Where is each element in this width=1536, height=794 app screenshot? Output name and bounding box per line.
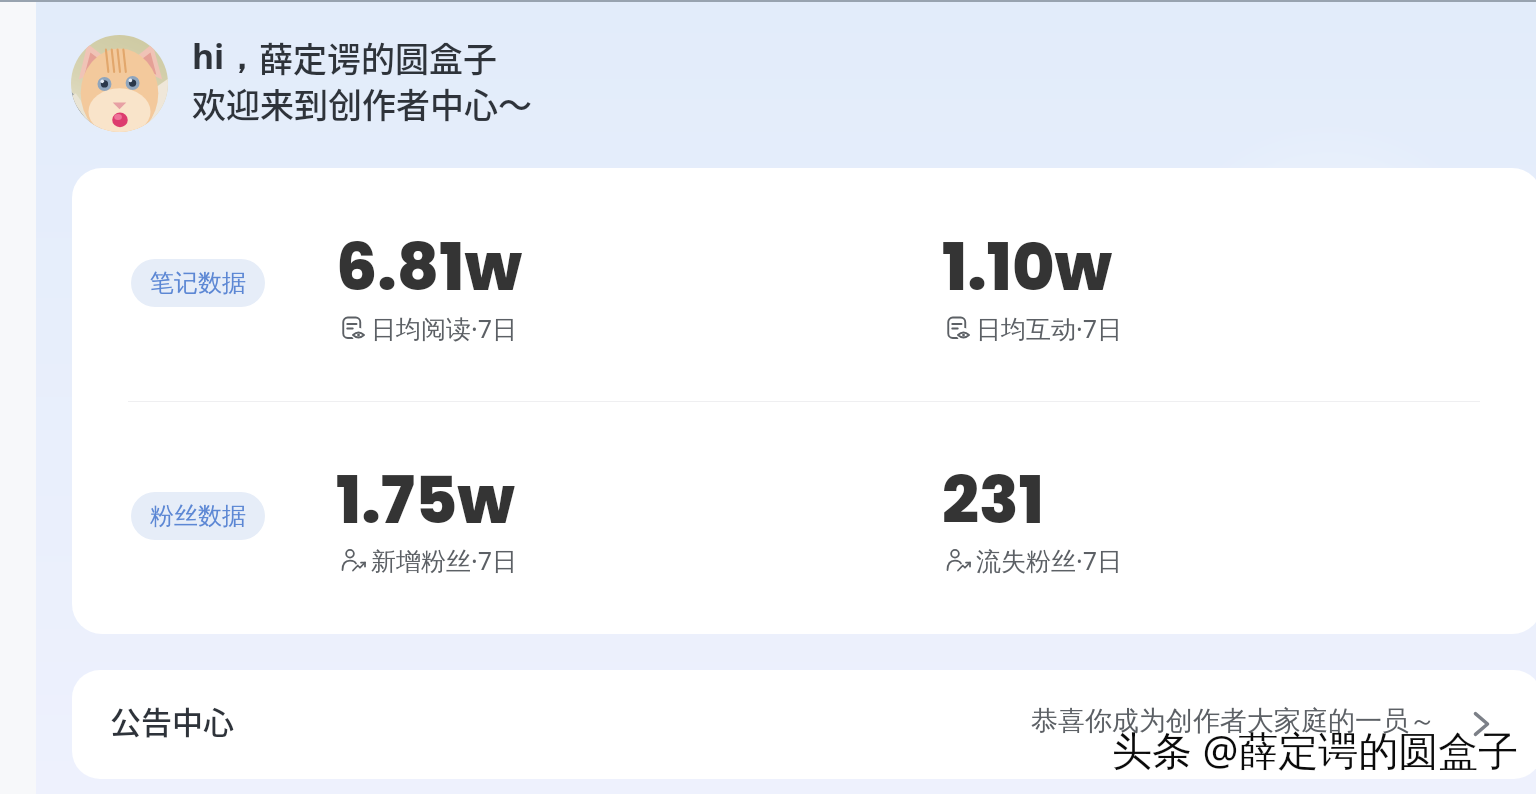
staticText: 头条 @薛定谔的圆盒子 xyxy=(1112,722,1519,777)
staticText: 欢迎来到创作者中心～ xyxy=(192,79,532,128)
other: 查看更多 xyxy=(1472,711,1491,737)
button[interactable] xyxy=(72,168,1536,634)
staticText: 公告中心 xyxy=(110,698,234,743)
staticText: 1.10w xyxy=(942,222,1113,313)
staticText: 1.75w xyxy=(336,455,515,546)
staticText: 6.81w xyxy=(336,222,522,313)
staticText: 新增粉丝·7日 xyxy=(371,543,518,577)
staticText: 231 xyxy=(942,455,1044,546)
staticText: 薛定谔的圆盒子 xyxy=(259,33,497,82)
staticText: 恭喜你成为创作者大家庭的一员～ xyxy=(1031,704,1436,738)
staticText: 粉丝数据 xyxy=(150,501,246,531)
staticText: 笔记数据 xyxy=(150,268,246,298)
staticText: 日均互动·7日 xyxy=(976,311,1123,345)
staticText: 日均阅读·7日 xyxy=(371,311,518,345)
button[interactable]: 笔记数据 xyxy=(131,259,265,307)
button[interactable]: 粉丝数据 xyxy=(131,492,265,540)
staticText: hi， xyxy=(192,33,259,79)
button[interactable]: 公告中心 xyxy=(72,670,1536,779)
staticText: 流失粉丝·7日 xyxy=(976,543,1123,577)
